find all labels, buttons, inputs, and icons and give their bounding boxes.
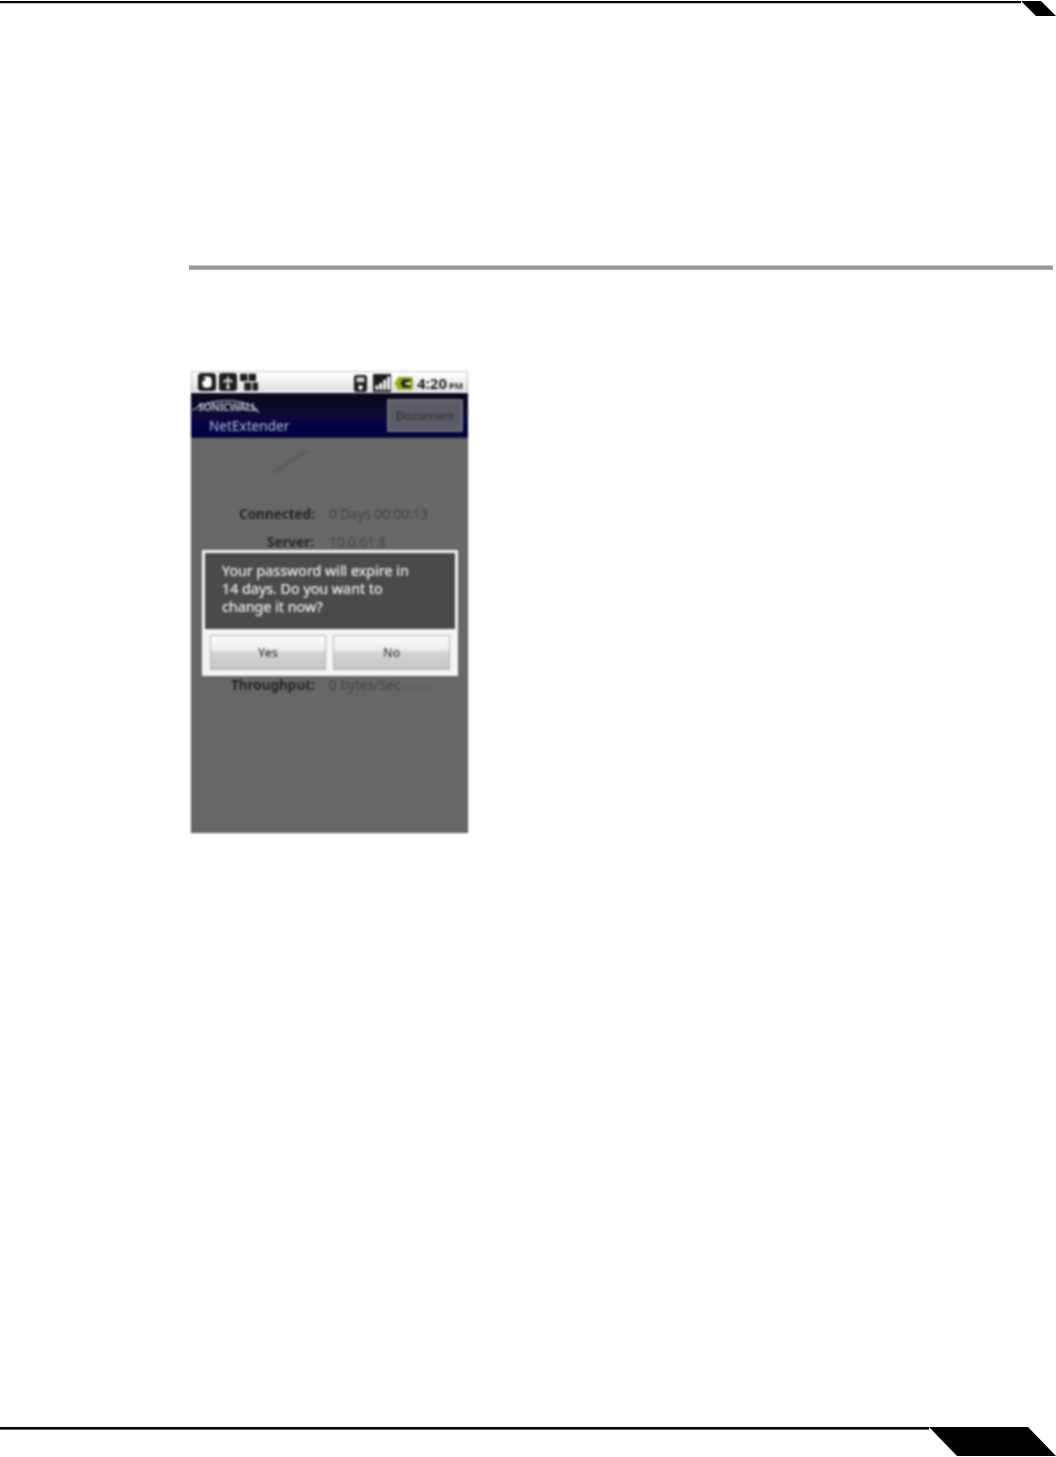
- staticText: NetExtender: [209, 416, 290, 435]
- staticText: 4:20: [417, 373, 447, 393]
- staticText: 0 bytes/Sec: [329, 676, 401, 694]
- staticText: Received:: [250, 619, 315, 637]
- staticText: No: [383, 644, 401, 661]
- button[interactable]: Server:: [191, 531, 468, 551]
- button[interactable]: No: [334, 636, 449, 669]
- staticText: 0 Days 00:00:13: [329, 505, 429, 523]
- button[interactable]: Disconnect VPN: [389, 401, 461, 430]
- staticText: Connected:: [239, 505, 315, 523]
- staticText: Throughput:: [231, 676, 315, 694]
- staticText: Server:: [267, 533, 315, 551]
- button[interactable]: Throughput:: [191, 674, 468, 694]
- button[interactable]: Packets:: [191, 645, 468, 665]
- staticText: Sent:: [281, 590, 315, 608]
- button[interactable]: Yes: [211, 636, 325, 669]
- staticText: Client:: [271, 562, 315, 580]
- staticText: PM: [449, 379, 464, 391]
- staticText: SONICWALL: [198, 400, 257, 414]
- staticText: 0 bytes: [329, 619, 375, 637]
- staticText: 10.0.61.200: [329, 562, 402, 580]
- staticText: Your password will expire in 14 days. Do…: [222, 561, 409, 616]
- staticText: 0 / 0: [329, 647, 357, 665]
- button[interactable]: Received:: [191, 617, 468, 637]
- button[interactable]: Client:: [191, 560, 468, 580]
- staticText: Yes: [258, 644, 278, 661]
- staticText: 10.0.61.8: [329, 533, 387, 551]
- staticText: 0 bytes: [329, 590, 375, 608]
- button[interactable]: Connected:: [191, 503, 468, 523]
- staticText: Disconnect: [396, 408, 454, 423]
- button[interactable]: Sent:: [191, 588, 468, 608]
- staticText: Packets:: [258, 647, 315, 665]
